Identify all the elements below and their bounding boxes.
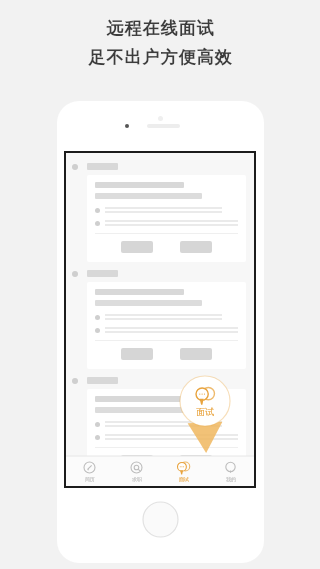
button[interactable] — [66, 371, 254, 478]
staticText: 远程在线面试 — [106, 18, 214, 39]
button[interactable] — [66, 264, 254, 371]
staticText: 简历 — [85, 476, 95, 482]
staticText: 面试 — [196, 406, 214, 417]
button[interactable] — [180, 455, 212, 467]
button[interactable]: 求职 — [113, 456, 160, 486]
button[interactable]: 面试 — [179, 375, 231, 427]
button[interactable]: 我的 — [207, 456, 254, 486]
button[interactable]: 简历 — [66, 456, 113, 486]
button[interactable]: 面试 — [160, 456, 207, 486]
button[interactable] — [121, 455, 153, 467]
staticText: 求职 — [132, 476, 142, 482]
staticText: 我的 — [226, 476, 236, 482]
button[interactable]: Home — [142, 501, 179, 538]
button[interactable] — [66, 157, 254, 264]
staticText: 面试 — [179, 476, 189, 482]
staticText: 足不出户方便高效 — [88, 47, 232, 68]
